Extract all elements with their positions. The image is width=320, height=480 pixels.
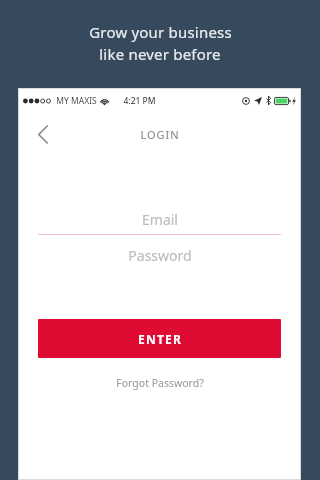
staticText: like never before <box>99 44 221 64</box>
staticText: MY MAXIS <box>56 95 97 107</box>
staticText: Forgot Password? <box>116 376 204 390</box>
button[interactable]: Password <box>19 241 300 269</box>
staticText: LOGIN <box>140 127 180 142</box>
button[interactable]: Email <box>19 204 300 234</box>
staticText: Email <box>142 210 178 229</box>
staticText: Password <box>128 246 192 265</box>
staticText: ENTER <box>138 331 182 347</box>
staticText: 4:21 PM <box>123 95 156 107</box>
button[interactable]: Forgot Password? <box>116 376 204 390</box>
button[interactable]: Back <box>29 120 57 148</box>
button[interactable]: ENTER <box>38 319 281 358</box>
staticText: Grow your business <box>89 22 232 42</box>
